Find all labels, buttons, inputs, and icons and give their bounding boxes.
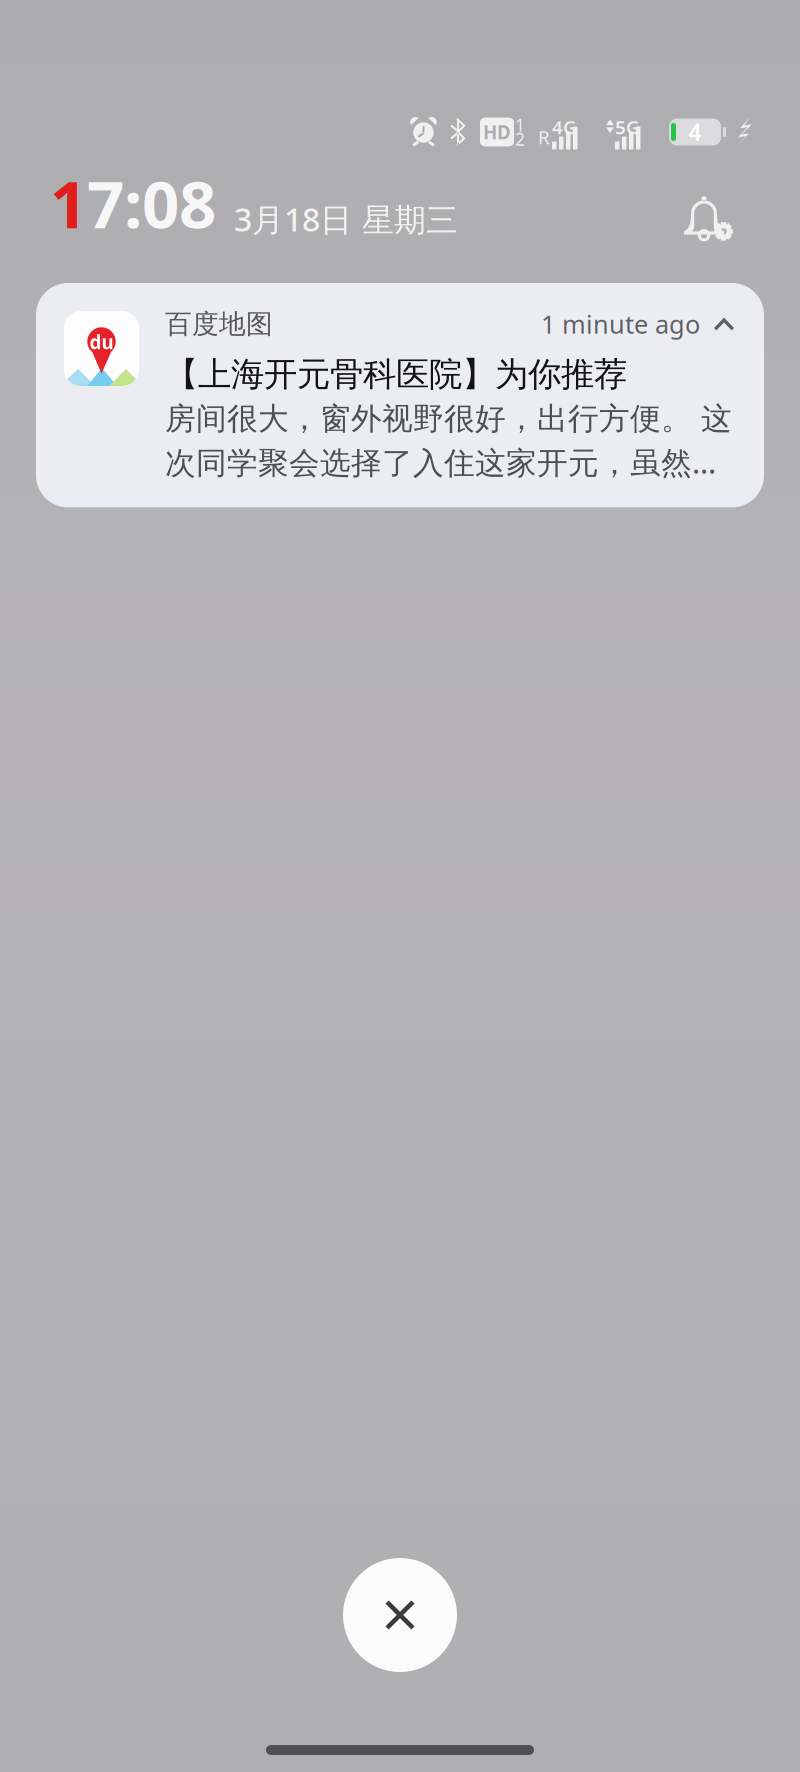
staticText: 百度地图 — [165, 308, 273, 340]
button[interactable]: Dismiss notifications — [343, 1558, 457, 1672]
staticText: 【上海开元骨科医院】为你推荐 — [165, 354, 627, 395]
staticText: 房间很大，窗外视野很好，出行方便。 这 — [165, 400, 732, 438]
staticText: 1 minute ago — [541, 307, 700, 341]
staticText: 4G — [552, 114, 577, 139]
staticText: 1 — [515, 113, 525, 136]
button[interactable]: du — [36, 283, 764, 507]
staticText: 4 — [688, 117, 701, 147]
staticText: 2 — [515, 127, 525, 150]
staticText: 次同学聚会选择了入住这家开元，虽然... — [165, 442, 716, 482]
staticText: 1 — [50, 160, 87, 246]
staticText: 7:08 — [87, 160, 216, 246]
staticText: R — [538, 125, 550, 149]
staticText: HD — [483, 120, 511, 144]
staticText: 5G — [615, 114, 640, 139]
staticText: du — [89, 330, 113, 354]
staticText: 3月18日 星期三 — [234, 198, 458, 240]
button[interactable]: Notification settings — [683, 194, 739, 246]
